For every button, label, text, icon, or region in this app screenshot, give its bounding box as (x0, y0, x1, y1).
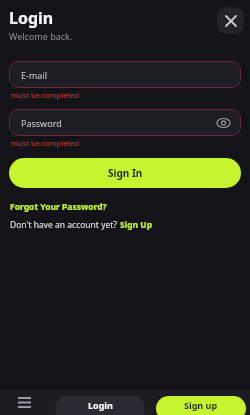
staticText: Login (88, 399, 113, 411)
button[interactable] (217, 7, 244, 34)
staticText: Sign In (108, 166, 143, 180)
button[interactable]: E-mail (9, 61, 241, 88)
button[interactable]: Sign up (156, 396, 246, 415)
staticText: Sign up (184, 399, 218, 411)
button[interactable]: Sign In (9, 158, 241, 188)
staticText: Don't have an account yet? (10, 219, 120, 231)
button[interactable]: Login (55, 396, 145, 415)
button[interactable]: Forgot Your Password? (10, 201, 107, 213)
button[interactable] (14, 393, 35, 412)
staticText: E-mail (21, 69, 48, 81)
staticText: must be completed (11, 138, 80, 148)
staticText: Login (9, 7, 54, 29)
staticText: must be completed (11, 90, 80, 100)
button[interactable]: Password (9, 109, 241, 136)
button[interactable]: Sign Up (120, 219, 153, 231)
staticText: Password (21, 117, 62, 129)
staticText: Welcome back. (9, 30, 73, 42)
